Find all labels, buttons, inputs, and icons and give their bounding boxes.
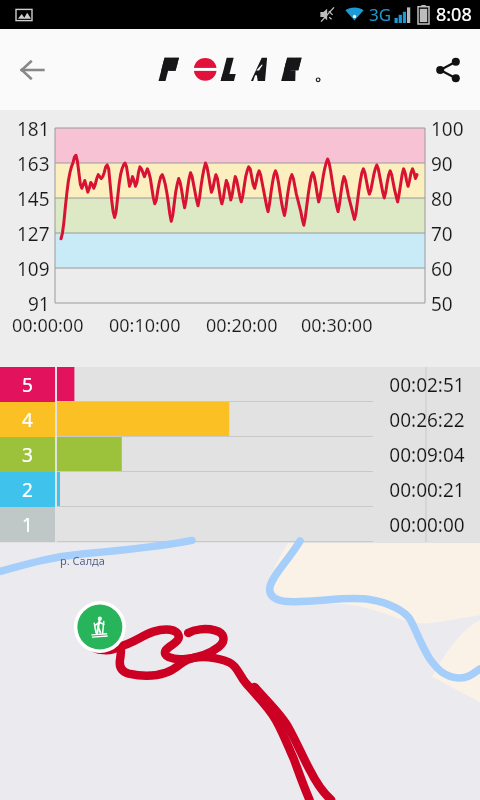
button[interactable]: 4: [0, 402, 480, 437]
button[interactable]: 5: [0, 367, 480, 402]
staticText: 00:02:51: [389, 372, 465, 398]
staticText: 00:00:21: [389, 477, 465, 503]
staticText: 91: [28, 291, 50, 317]
staticText: 181: [17, 116, 50, 142]
staticText: 00:09:04: [389, 442, 465, 468]
staticText: р. Салда: [60, 553, 105, 568]
staticText: 50: [431, 291, 453, 317]
staticText: 3: [22, 442, 33, 468]
button[interactable]: Share: [416, 38, 480, 102]
staticText: 100: [431, 116, 464, 142]
staticText: 00:30:00: [301, 313, 373, 338]
staticText: 60: [431, 256, 453, 282]
staticText: 70: [431, 221, 453, 247]
staticText: 4: [22, 407, 33, 433]
staticText: 163: [17, 151, 50, 177]
staticText: 00:20:00: [206, 313, 278, 338]
staticText: 90: [431, 151, 453, 177]
staticText: 3G: [369, 3, 392, 26]
staticText: 127: [17, 221, 50, 247]
button[interactable]: 1: [0, 507, 480, 542]
staticText: 2: [22, 477, 33, 503]
button[interactable]: Back: [0, 38, 64, 102]
button[interactable]: 3: [0, 437, 480, 472]
button[interactable]: 2: [0, 472, 480, 507]
staticText: 80: [431, 186, 453, 212]
staticText: 5: [22, 372, 33, 398]
staticText: 8:08: [436, 2, 472, 27]
button[interactable]: Route map: [0, 543, 480, 800]
staticText: 00:00:00: [389, 512, 465, 538]
staticText: 00:26:22: [389, 407, 465, 433]
staticText: 1: [22, 512, 33, 538]
staticText: 00:00:00: [12, 313, 84, 338]
staticText: 109: [17, 256, 50, 282]
staticText: 145: [17, 186, 50, 212]
staticText: 00:10:00: [109, 313, 181, 338]
